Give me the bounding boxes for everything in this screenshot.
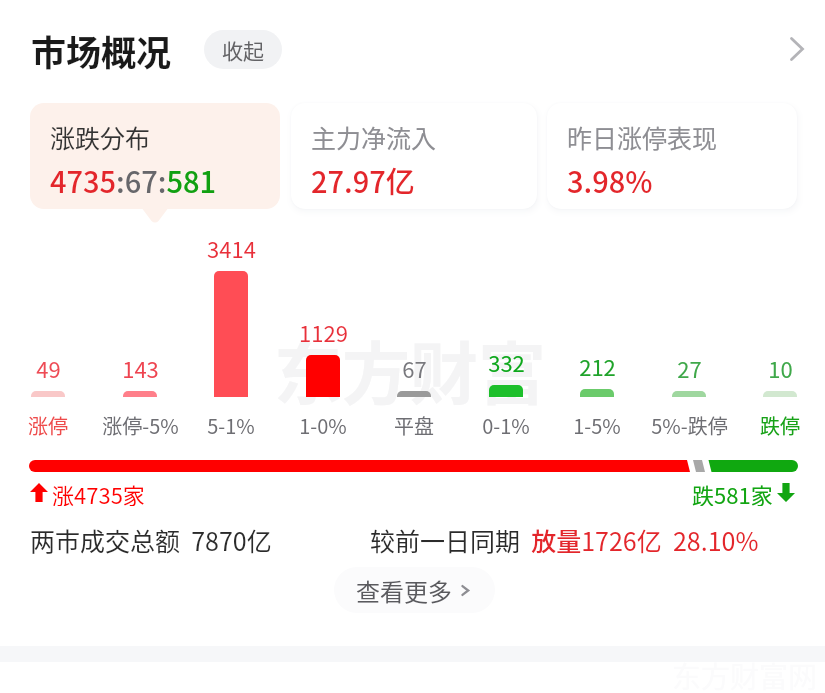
button[interactable]: 涨4735家 <box>30 478 145 506</box>
staticText: 平盘 <box>394 411 434 440</box>
staticText: 东方财富网 <box>672 654 818 693</box>
staticText: 3.98% <box>567 159 653 201</box>
staticText: 5%-跌停 <box>651 411 728 440</box>
button[interactable]: 昨日涨停表现 <box>547 103 797 209</box>
staticText: 3414 <box>207 232 256 262</box>
button[interactable]: 收起 <box>204 30 282 69</box>
button[interactable]: Expand <box>774 26 820 72</box>
staticText: 东方财富 <box>274 320 547 418</box>
button[interactable]: 跌581家 <box>692 478 795 506</box>
button[interactable]: 查看更多 <box>334 567 495 613</box>
staticText: 1-5% <box>573 411 621 440</box>
staticText: 查看更多 <box>356 573 452 608</box>
button[interactable]: 主力净流入 <box>291 103 537 209</box>
staticText: 4735:67:581 <box>50 159 217 201</box>
staticText: 市场概况 <box>31 25 172 73</box>
staticText: 49 <box>36 352 61 382</box>
staticText: 较前一日同期 放量1726亿 28.10% <box>370 522 759 556</box>
staticText: 跌581家 <box>692 478 773 506</box>
staticText: 67 <box>402 352 427 382</box>
staticText: 1-0% <box>299 411 347 440</box>
staticText: 涨停 <box>28 411 68 440</box>
staticText: 27 <box>677 352 702 382</box>
button[interactable]: 涨跌分布 <box>30 103 280 209</box>
staticText: 27.97亿 <box>311 159 415 201</box>
staticText: 涨4735家 <box>52 478 145 506</box>
staticText: 涨跌分布 <box>50 119 151 155</box>
staticText: 昨日涨停表现 <box>567 119 718 155</box>
staticText: 332 <box>488 346 525 376</box>
staticText: 143 <box>122 352 159 382</box>
staticText: 收起 <box>222 35 264 65</box>
staticText: 212 <box>579 350 616 380</box>
staticText: 两市成交总额 7870亿 <box>30 522 272 556</box>
staticText: 1129 <box>299 316 348 346</box>
staticText: 跌停 <box>760 411 800 440</box>
staticText: 主力净流入 <box>311 119 437 155</box>
staticText: 涨停-5% <box>102 411 179 440</box>
staticText: 10 <box>768 352 793 382</box>
staticText: 5-1% <box>207 411 255 440</box>
staticText: 0-1% <box>482 411 530 440</box>
